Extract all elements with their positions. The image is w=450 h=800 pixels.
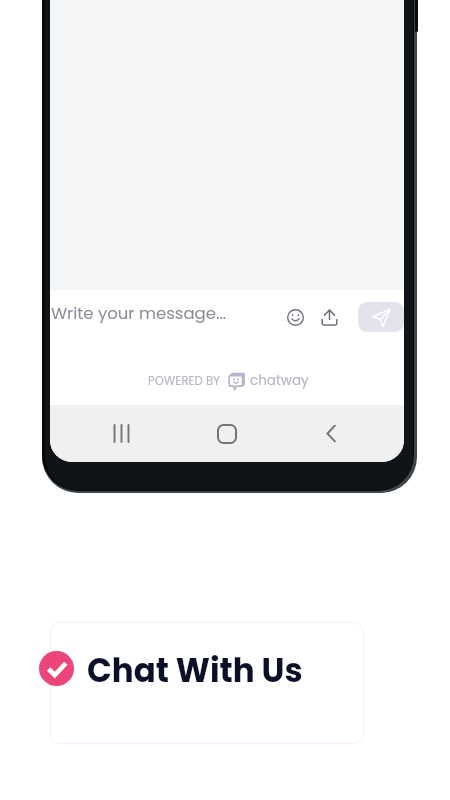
staticText: Chat With Us <box>87 648 303 694</box>
button[interactable]: Attach file <box>317 305 341 329</box>
button[interactable]: Recent apps <box>105 417 138 450</box>
button[interactable]: Send <box>358 302 404 332</box>
staticText: POWERED BY <box>148 373 221 389</box>
staticText: chatway <box>250 371 309 390</box>
staticText: Write your message... <box>51 302 227 325</box>
button[interactable] <box>50 622 364 744</box>
button[interactable]: Home <box>210 417 243 450</box>
button[interactable]: Emoji <box>283 305 307 329</box>
button[interactable]: Back <box>315 417 348 450</box>
